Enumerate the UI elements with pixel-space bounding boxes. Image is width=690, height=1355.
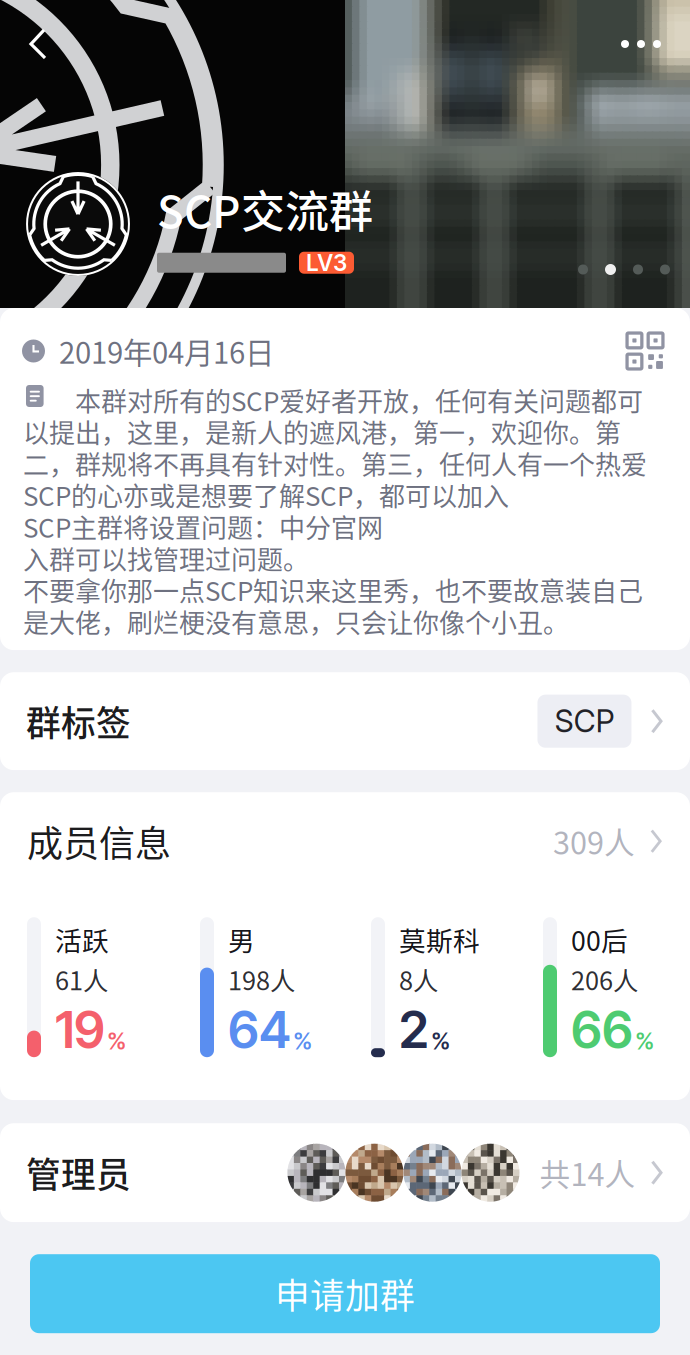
staticText: 男 [228, 920, 255, 959]
staticText: 管理员 [26, 1148, 131, 1198]
staticText: 00后 [571, 920, 628, 959]
staticText: 2 [399, 999, 429, 1060]
staticText: 309人 [553, 819, 635, 863]
staticText: 206人 [571, 961, 638, 997]
staticText: 198人 [228, 961, 295, 997]
staticText: SCP交流群 [157, 177, 373, 241]
staticText: 莫斯科 [399, 920, 480, 959]
staticText: % [107, 1026, 126, 1055]
staticText: 19 [55, 999, 105, 1060]
staticText: 群标签 [26, 696, 131, 746]
button[interactable]: 群标签 [0, 672, 690, 770]
staticText: 本群对所有的SCP爱好者开放，任何有关问题都可以提出，这里，是新人的遮风港，第一… [23, 381, 647, 640]
staticText: % [293, 1026, 312, 1055]
staticText: 申请加群 [275, 1269, 415, 1319]
button[interactable]: 成员信息 [0, 792, 690, 890]
button[interactable]: Group QR code [622, 328, 668, 374]
button[interactable]: 管理员 [0, 1123, 690, 1222]
staticText: 2019年04月16日 [59, 330, 274, 372]
staticText: % [431, 1026, 450, 1055]
staticText: 8人 [399, 961, 438, 997]
staticText: LV3 [306, 249, 347, 276]
button[interactable]: 申请加群 [0, 1254, 690, 1333]
staticText: 共14人 [539, 1150, 635, 1195]
staticText: SCP [554, 703, 614, 740]
staticText: 61人 [55, 961, 108, 997]
staticText: 活跃 [55, 920, 109, 959]
staticText: 64 [228, 999, 291, 1060]
button[interactable]: More options [604, 21, 678, 67]
button[interactable]: Back [14, 21, 62, 67]
staticText: % [635, 1026, 654, 1055]
staticText: 成员信息 [27, 815, 171, 867]
staticText: 66 [571, 999, 633, 1060]
